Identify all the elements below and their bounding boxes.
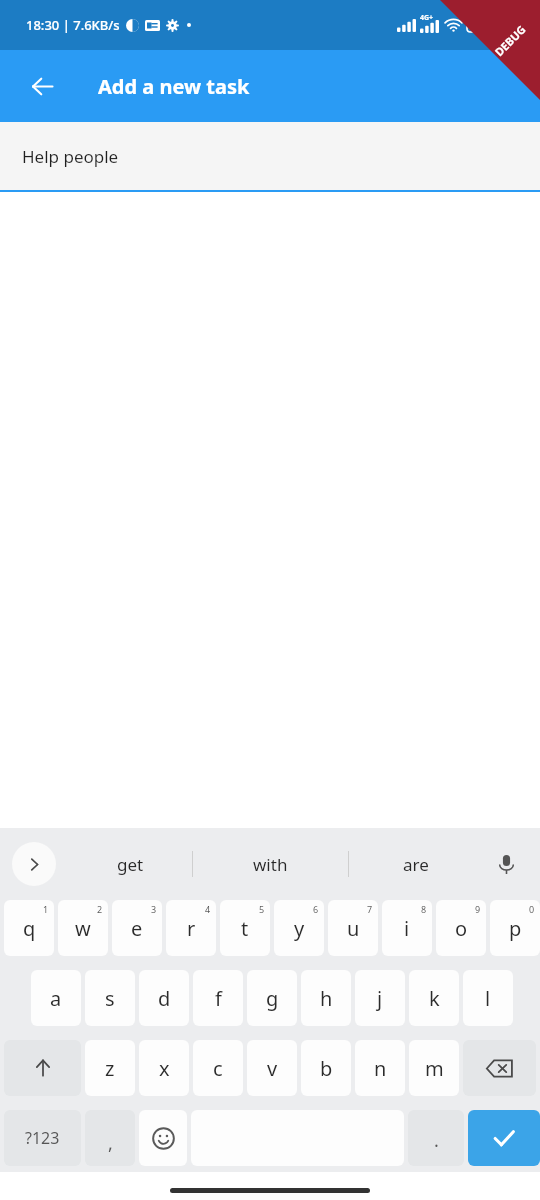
staticText: c	[213, 1055, 223, 1082]
staticText: 18:30 | 7.6KB/s	[26, 16, 120, 34]
staticText: Help people	[22, 145, 119, 168]
button[interactable]: m	[409, 1040, 459, 1096]
button[interactable]: v	[247, 1040, 297, 1096]
staticText: Add a new task	[98, 73, 250, 100]
button[interactable]: a	[31, 970, 81, 1026]
staticText: 7	[367, 903, 373, 915]
staticText: 2	[97, 903, 103, 915]
button[interactable]: u	[328, 900, 378, 956]
button[interactable]: Enter	[468, 1110, 540, 1166]
button[interactable]: z	[85, 1040, 135, 1096]
staticText: f	[215, 985, 222, 1012]
staticText: 8	[421, 903, 427, 915]
staticText: ,	[108, 1131, 113, 1156]
button[interactable]: Voice input	[484, 842, 528, 886]
staticText: s	[105, 985, 115, 1012]
staticText: a	[50, 985, 62, 1012]
button[interactable]: c	[193, 1040, 243, 1096]
staticText: r	[187, 915, 196, 942]
staticText: o	[455, 915, 468, 942]
staticText: w	[75, 915, 91, 942]
button[interactable]: y	[274, 900, 324, 956]
staticText: y	[294, 915, 305, 942]
button[interactable]: Backspace	[463, 1040, 536, 1096]
staticText: q	[23, 915, 36, 942]
staticText: .	[434, 1128, 439, 1153]
staticText: l	[485, 985, 491, 1012]
button[interactable]: o	[436, 900, 486, 956]
button[interactable]: More suggestions	[12, 842, 56, 886]
staticText: 6	[313, 903, 319, 915]
button[interactable]: g	[247, 970, 297, 1026]
staticText: h	[320, 985, 333, 1012]
button[interactable]: f	[193, 970, 243, 1026]
staticText: 5	[259, 903, 265, 915]
button[interactable]: Comma	[85, 1110, 135, 1166]
staticText: e	[131, 915, 143, 942]
staticText: 3	[151, 903, 157, 915]
staticText: k	[429, 985, 440, 1012]
button[interactable]: t	[220, 900, 270, 956]
staticText: d	[158, 985, 171, 1012]
button[interactable]: Back	[18, 62, 66, 110]
staticText: are	[403, 853, 429, 876]
staticText: m	[425, 1055, 444, 1082]
staticText: u	[347, 915, 360, 942]
button[interactable]: w	[58, 900, 108, 956]
staticText: 9	[475, 903, 481, 915]
button[interactable]: x	[139, 1040, 189, 1096]
staticText: g	[266, 985, 279, 1012]
button[interactable]: q	[4, 900, 54, 956]
staticText: 4	[205, 903, 211, 915]
button[interactable]: l	[463, 970, 513, 1026]
staticText: DEBUG	[491, 22, 529, 59]
staticText: n	[374, 1055, 387, 1082]
button[interactable]: ?123	[4, 1110, 81, 1166]
staticText: i	[404, 915, 410, 942]
staticText: t	[241, 915, 249, 942]
button[interactable]: k	[409, 970, 459, 1026]
button[interactable]: Emoji	[139, 1110, 187, 1166]
button[interactable]: Help people	[0, 122, 540, 190]
button[interactable]: with	[193, 828, 348, 900]
button[interactable]: e	[112, 900, 162, 956]
button[interactable]: p	[490, 900, 540, 956]
staticText: b	[320, 1055, 333, 1082]
button[interactable]: Shift	[4, 1040, 81, 1096]
staticText: ?123	[25, 1127, 60, 1149]
staticText: p	[509, 915, 522, 942]
button[interactable]: j	[355, 970, 405, 1026]
button[interactable]: n	[355, 1040, 405, 1096]
staticText: j	[377, 985, 383, 1012]
staticText: 4G+	[420, 13, 434, 23]
staticText: 0	[529, 903, 535, 915]
staticText: with	[253, 853, 288, 876]
button[interactable]: h	[301, 970, 351, 1026]
button[interactable]: get	[68, 828, 192, 900]
button[interactable]: d	[139, 970, 189, 1026]
button[interactable]: s	[85, 970, 135, 1026]
button[interactable]: are	[349, 828, 483, 900]
staticText: x	[159, 1055, 170, 1082]
staticText: v	[267, 1055, 278, 1082]
button[interactable]: i	[382, 900, 432, 956]
button[interactable]: Period	[408, 1110, 464, 1166]
button[interactable]: b	[301, 1040, 351, 1096]
button[interactable]: r	[166, 900, 216, 956]
staticText: z	[105, 1055, 115, 1082]
staticText: get	[117, 853, 144, 876]
staticText: 1	[43, 903, 49, 915]
